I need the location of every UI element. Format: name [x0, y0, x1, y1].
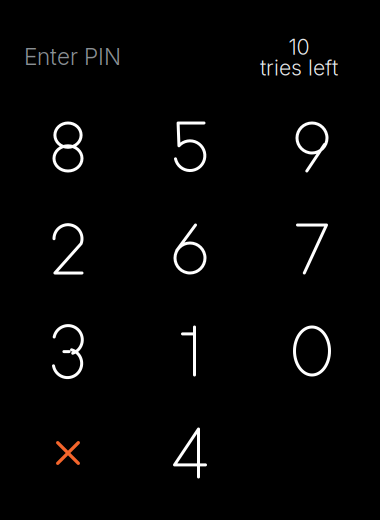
button[interactable] — [129, 96, 251, 198]
button[interactable] — [129, 300, 251, 402]
button[interactable] — [129, 402, 251, 504]
button[interactable] — [251, 198, 373, 300]
button[interactable] — [129, 198, 251, 300]
button[interactable] — [251, 300, 373, 402]
button[interactable] — [7, 198, 129, 300]
button[interactable] — [7, 300, 129, 402]
staticText: Enter PIN — [24, 43, 121, 70]
staticText: 10 — [288, 34, 309, 60]
button[interactable]: Delete — [7, 402, 129, 504]
button[interactable] — [251, 96, 373, 198]
staticText: tries left — [260, 55, 338, 81]
button[interactable] — [7, 96, 129, 198]
